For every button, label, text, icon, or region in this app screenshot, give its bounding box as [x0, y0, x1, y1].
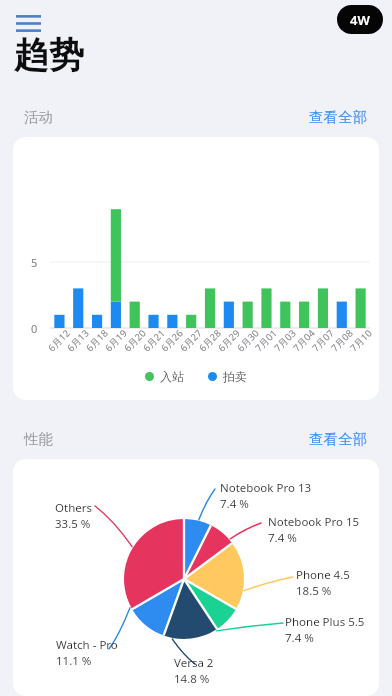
- staticText: 7月07: [309, 327, 337, 354]
- staticText: 7月03: [271, 327, 299, 354]
- staticText: 7月10: [347, 327, 375, 354]
- staticText: Notebook Pro 13: [220, 480, 312, 496]
- staticText: 6月18: [83, 327, 111, 354]
- staticText: Phone Plus 5.5: [285, 614, 365, 630]
- staticText: 性能: [24, 430, 53, 448]
- staticText: 33.5 %: [55, 516, 91, 532]
- staticText: 7月04: [290, 327, 318, 354]
- staticText: 0: [31, 321, 38, 336]
- staticText: Watch - Pro: [56, 637, 118, 653]
- staticText: 7月08: [328, 327, 356, 354]
- staticText: 5: [31, 255, 38, 270]
- staticText: 查看全部: [309, 430, 367, 448]
- staticText: 6月13: [64, 327, 92, 354]
- staticText: Phone 4.5: [296, 567, 350, 583]
- button[interactable]: Notebook Pro 13: [13, 459, 379, 696]
- staticText: 活动: [24, 108, 53, 126]
- staticText: 6月29: [215, 327, 243, 354]
- staticText: 6月20: [121, 327, 149, 354]
- staticText: 7.4 %: [285, 630, 314, 646]
- staticText: Notebook Pro 15: [268, 514, 360, 530]
- staticText: 6月28: [196, 327, 224, 354]
- staticText: 14.8 %: [174, 671, 210, 687]
- staticText: 6月19: [102, 327, 130, 354]
- staticText: 6月27: [177, 327, 205, 354]
- staticText: 11.1 %: [56, 653, 92, 669]
- button[interactable]: 查看全部: [305, 426, 371, 452]
- button[interactable]: Menu: [6, 1, 50, 45]
- staticText: 6月21: [140, 327, 168, 354]
- staticText: 4W: [350, 11, 370, 29]
- staticText: 7.4 %: [220, 496, 249, 512]
- staticText: 18.5 %: [296, 583, 332, 599]
- staticText: Others: [55, 500, 92, 516]
- staticText: 趋势: [14, 33, 84, 77]
- staticText: 6月26: [158, 327, 186, 354]
- button[interactable]: 4W: [337, 5, 383, 34]
- staticText: 7.4 %: [268, 530, 297, 546]
- staticText: Versa 2: [174, 655, 214, 671]
- staticText: 入站: [160, 369, 184, 384]
- staticText: 拍卖: [223, 369, 247, 384]
- staticText: 查看全部: [309, 108, 367, 126]
- staticText: 6月12: [45, 327, 73, 354]
- staticText: 6月30: [234, 327, 262, 354]
- staticText: 7月01: [252, 327, 280, 354]
- button[interactable]: 查看全部: [305, 104, 371, 130]
- button[interactable]: 5: [13, 137, 379, 400]
